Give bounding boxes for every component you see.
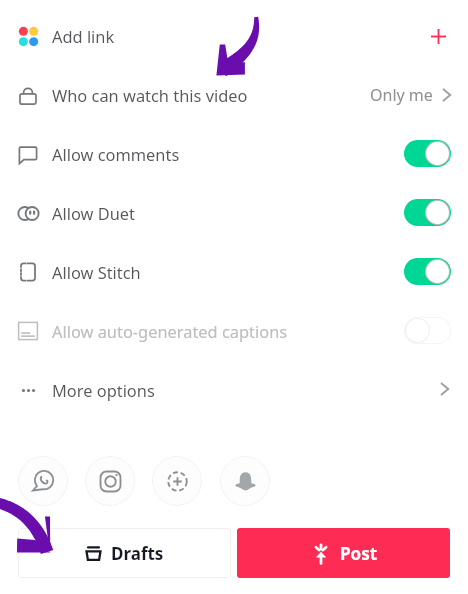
button[interactable]: Allow comments xyxy=(0,124,468,183)
staticText: Drafts xyxy=(111,542,164,565)
staticText: Add link xyxy=(52,25,115,47)
button[interactable]: Share xyxy=(18,456,68,506)
staticText: Only me xyxy=(370,84,433,106)
button[interactable]: Share xyxy=(85,456,135,506)
button[interactable]: Toggle off xyxy=(404,317,451,344)
staticText: Who can watch this video xyxy=(52,84,248,106)
button[interactable]: Share xyxy=(220,456,270,506)
button[interactable]: Add link xyxy=(423,21,453,51)
button[interactable]: Allow Stitch xyxy=(0,242,468,301)
staticText: Allow comments xyxy=(52,143,180,165)
button[interactable]: Toggle on xyxy=(404,258,451,285)
button[interactable]: Share xyxy=(152,456,202,506)
button[interactable]: Toggle on xyxy=(404,140,451,167)
button[interactable]: More options xyxy=(430,374,460,404)
button[interactable]: Allow auto-generated captions xyxy=(0,301,468,360)
button[interactable]: Who can watch this video xyxy=(0,65,468,124)
staticText: Allow auto-generated captions xyxy=(52,320,288,342)
button[interactable]: Allow Duet xyxy=(0,183,468,242)
button[interactable]: Only me xyxy=(370,81,455,109)
button[interactable]: Add link xyxy=(0,6,468,65)
staticText: Allow Stitch xyxy=(52,261,141,283)
staticText: Allow Duet xyxy=(52,202,135,224)
staticText: More options xyxy=(52,379,155,401)
button[interactable]: More options xyxy=(0,360,468,419)
button[interactable]: Post xyxy=(237,528,450,578)
button[interactable]: Toggle on xyxy=(404,199,451,226)
button[interactable]: Drafts xyxy=(18,528,231,578)
staticText: Post xyxy=(340,542,378,565)
